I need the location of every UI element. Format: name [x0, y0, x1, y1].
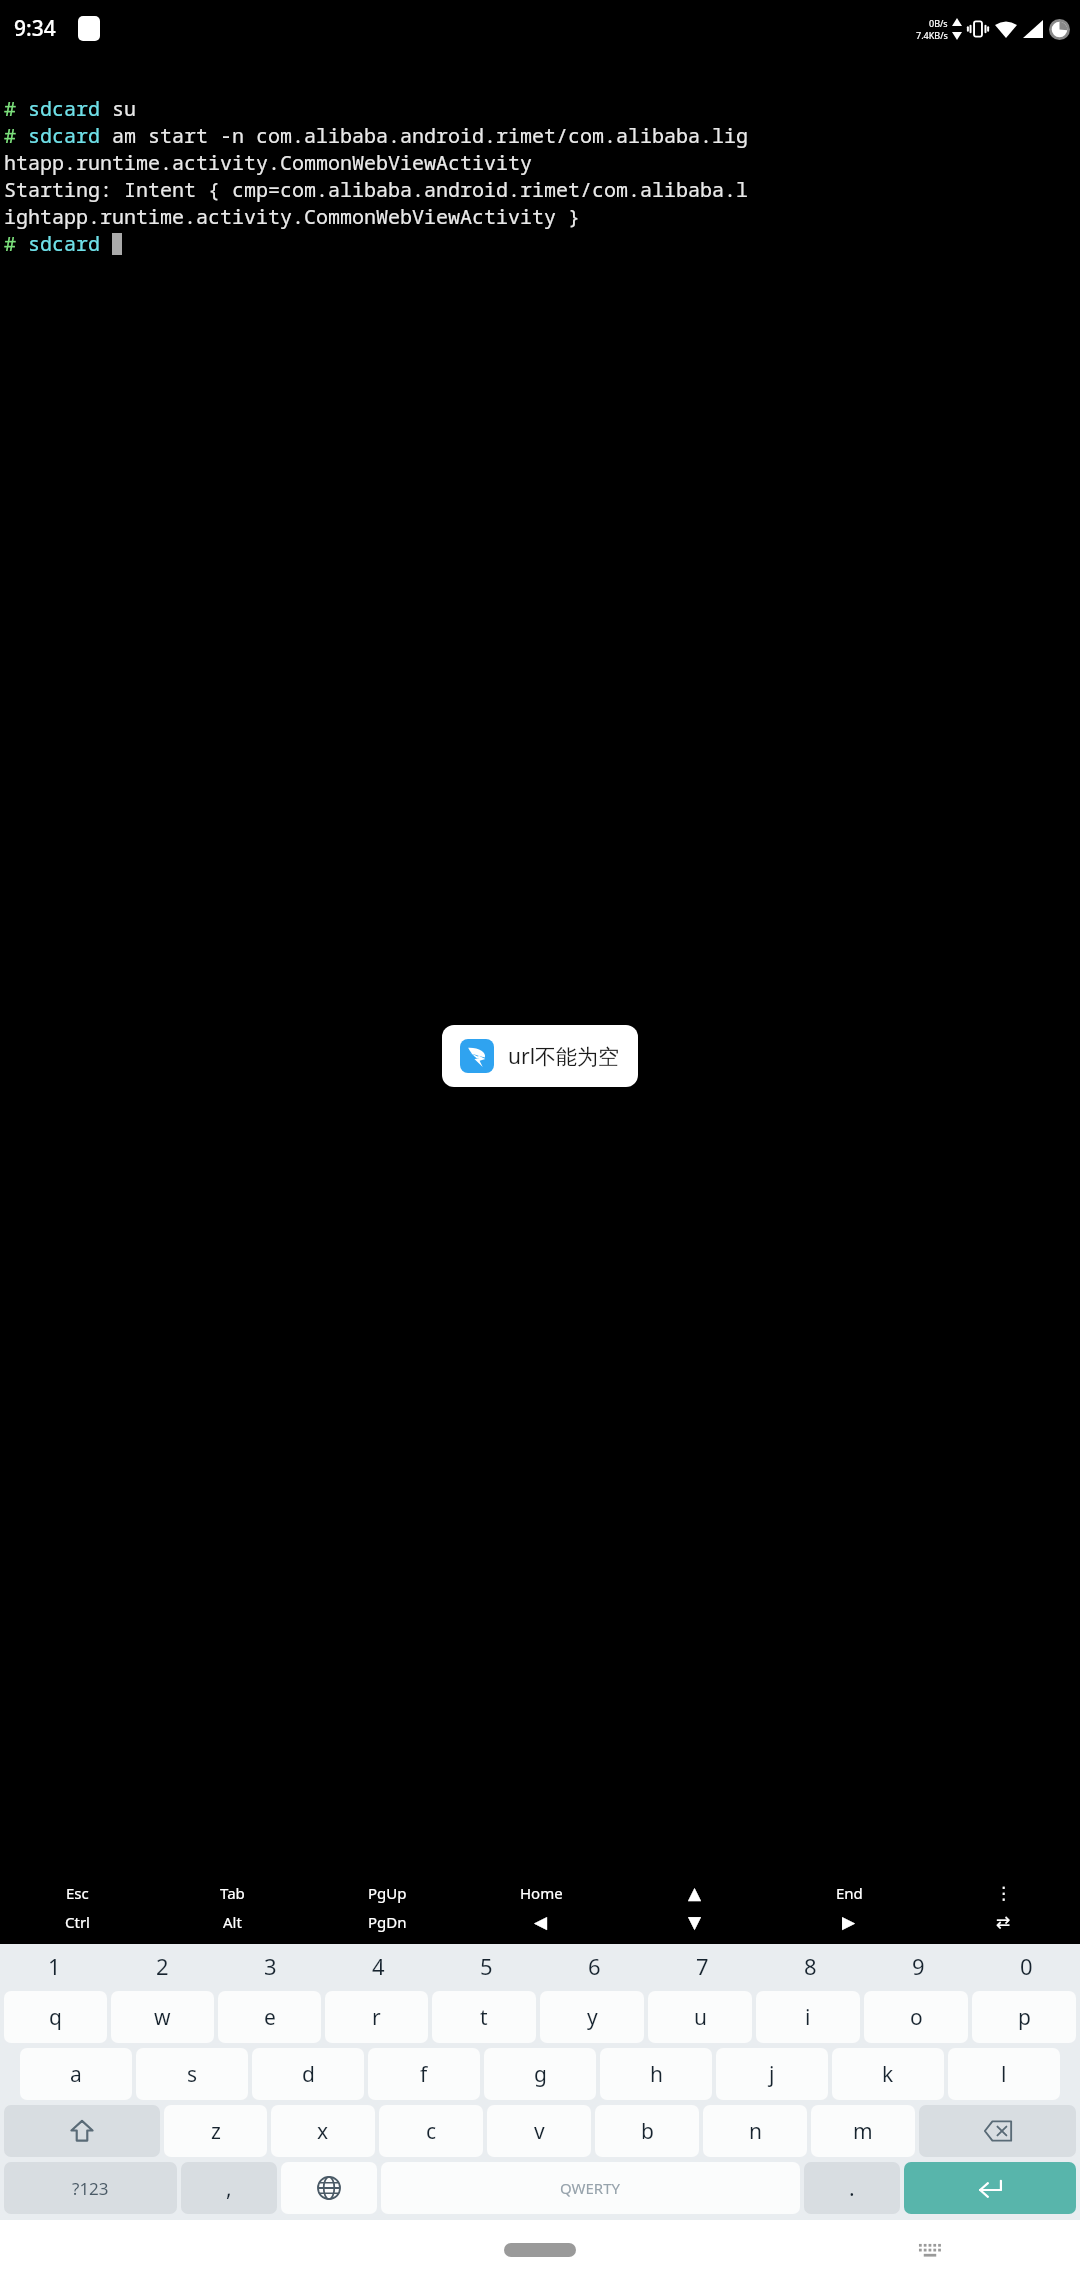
staticText: ⇄: [996, 1912, 1011, 1932]
button[interactable]: url不能为空: [442, 1025, 638, 1087]
staticText: Home: [520, 1883, 563, 1903]
button[interactable]: p: [972, 1991, 1076, 2043]
button[interactable]: Home: [464, 1878, 618, 1907]
staticText: z: [211, 2117, 221, 2146]
staticText: ▶: [842, 1912, 856, 1932]
button[interactable]: Shift: [4, 2105, 160, 2157]
button[interactable]: Enter: [904, 2162, 1076, 2214]
staticText: QWERTY: [560, 2178, 621, 2198]
staticText: a: [70, 2060, 82, 2089]
button[interactable]: i: [756, 1991, 860, 2043]
button[interactable]: 8: [756, 1944, 864, 1987]
button[interactable]: g: [484, 2048, 596, 2100]
staticText: 7: [696, 1951, 709, 1981]
button[interactable]: .: [804, 2162, 900, 2214]
button[interactable]: 4: [324, 1944, 432, 1987]
staticText: f: [420, 2060, 428, 2089]
button[interactable]: 7: [648, 1944, 756, 1987]
button[interactable]: Alt: [155, 1907, 310, 1936]
button[interactable]: 0: [972, 1944, 1080, 1987]
button[interactable]: a: [20, 2048, 132, 2100]
staticText: 7.4KB/s: [916, 29, 948, 41]
button[interactable]: b: [595, 2105, 699, 2157]
button[interactable]: l: [948, 2048, 1060, 2100]
button[interactable]: End: [772, 1878, 926, 1907]
button[interactable]: 5: [432, 1944, 540, 1987]
button[interactable]: d: [252, 2048, 364, 2100]
button[interactable]: q: [4, 1991, 107, 2043]
button[interactable]: o: [864, 1991, 968, 2043]
button[interactable]: c: [379, 2105, 483, 2157]
button[interactable]: 2: [108, 1944, 216, 1987]
button[interactable]: Tab: [155, 1878, 310, 1907]
button[interactable]: ,: [181, 2162, 277, 2214]
button[interactable]: e: [218, 1991, 321, 2043]
button[interactable]: ▼: [618, 1907, 772, 1936]
button[interactable]: ▲: [618, 1878, 772, 1907]
staticText: g: [534, 2060, 547, 2089]
button[interactable]: t: [432, 1991, 536, 2043]
button[interactable]: z: [164, 2105, 267, 2157]
button[interactable]: s: [136, 2048, 248, 2100]
staticText: End: [836, 1883, 863, 1903]
button[interactable]: Keyboard: [910, 2230, 950, 2270]
staticText: 0B/s: [929, 17, 948, 29]
staticText: # sdcard am start -n com.alibaba.android…: [4, 122, 748, 149]
staticText: Starting: Intent { cmp=com.alibaba.andro…: [4, 176, 748, 203]
staticText: PgDn: [368, 1912, 407, 1932]
button[interactable]: Home: [504, 2243, 576, 2257]
button[interactable]: 3: [216, 1944, 324, 1987]
button[interactable]: 6: [540, 1944, 648, 1987]
button[interactable]: f: [368, 2048, 480, 2100]
button[interactable]: Backspace: [919, 2105, 1076, 2157]
staticText: s: [187, 2060, 198, 2089]
staticText: 5: [480, 1951, 493, 1981]
button[interactable]: v: [487, 2105, 591, 2157]
staticText: j: [769, 2060, 775, 2089]
button[interactable]: ⇄: [926, 1907, 1080, 1936]
staticText: c: [426, 2117, 437, 2146]
staticText: k: [882, 2060, 894, 2089]
staticText: 1: [48, 1951, 61, 1981]
button[interactable]: k: [832, 2048, 944, 2100]
staticText: h: [650, 2060, 663, 2089]
button[interactable]: 9: [864, 1944, 972, 1987]
staticText: # sdcard: [4, 230, 112, 257]
button[interactable]: ?123: [4, 2162, 177, 2214]
staticText: l: [1001, 2060, 1007, 2089]
button[interactable]: 1: [0, 1944, 108, 1987]
button[interactable]: ⋮: [926, 1878, 1080, 1907]
button[interactable]: w: [111, 1991, 214, 2043]
staticText: y: [587, 2003, 598, 2032]
button[interactable]: ◀: [464, 1907, 618, 1936]
button[interactable]: ▶: [772, 1907, 926, 1936]
button[interactable]: m: [811, 2105, 915, 2157]
staticText: 4: [372, 1951, 385, 1981]
button[interactable]: y: [540, 1991, 644, 2043]
button[interactable]: PgDn: [310, 1907, 464, 1936]
staticText: 3: [264, 1951, 277, 1981]
button[interactable]: n: [703, 2105, 807, 2157]
button[interactable]: h: [600, 2048, 712, 2100]
staticText: 9:34: [14, 14, 56, 43]
button[interactable]: Ctrl: [0, 1907, 155, 1936]
staticText: ▼: [688, 1912, 702, 1932]
button[interactable]: j: [716, 2048, 828, 2100]
staticText: q: [49, 2003, 62, 2032]
staticText: ightapp.runtime.activity.CommonWebViewAc…: [4, 203, 580, 230]
staticText: ⋮: [995, 1883, 1012, 1903]
staticText: Ctrl: [65, 1912, 90, 1932]
button[interactable]: PgUp: [310, 1878, 464, 1907]
staticText: b: [641, 2117, 654, 2146]
button[interactable]: Change language: [281, 2162, 377, 2214]
button[interactable]: x: [271, 2105, 375, 2157]
button[interactable]: u: [648, 1991, 752, 2043]
staticText: 0: [1020, 1951, 1033, 1981]
staticText: u: [694, 2003, 707, 2032]
button[interactable]: Esc: [0, 1878, 155, 1907]
staticText: t: [480, 2003, 488, 2032]
button[interactable]: r: [325, 1991, 428, 2043]
staticText: m: [853, 2117, 873, 2146]
staticText: 9: [912, 1951, 925, 1981]
button[interactable]: QWERTY: [381, 2162, 800, 2214]
